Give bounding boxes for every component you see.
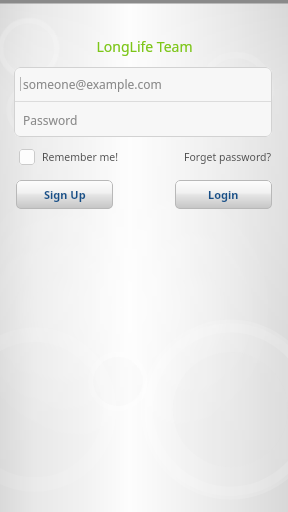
staticText: Password	[23, 112, 78, 128]
staticText: Login	[208, 187, 239, 202]
staticText: LongLife Team	[96, 37, 193, 56]
staticText: someone@example.com	[23, 76, 162, 92]
button[interactable]: Login	[175, 180, 272, 209]
button[interactable]: Remember me!	[19, 149, 119, 165]
button[interactable]: someone@example.com	[14, 67, 272, 101]
button[interactable]: Password	[14, 102, 272, 137]
button[interactable]: Sign Up	[16, 180, 113, 209]
staticText: Remember me!	[42, 150, 119, 164]
button[interactable]: Forget password?	[184, 150, 272, 164]
staticText: Sign Up	[44, 187, 86, 202]
staticText: Forget password?	[184, 150, 272, 164]
